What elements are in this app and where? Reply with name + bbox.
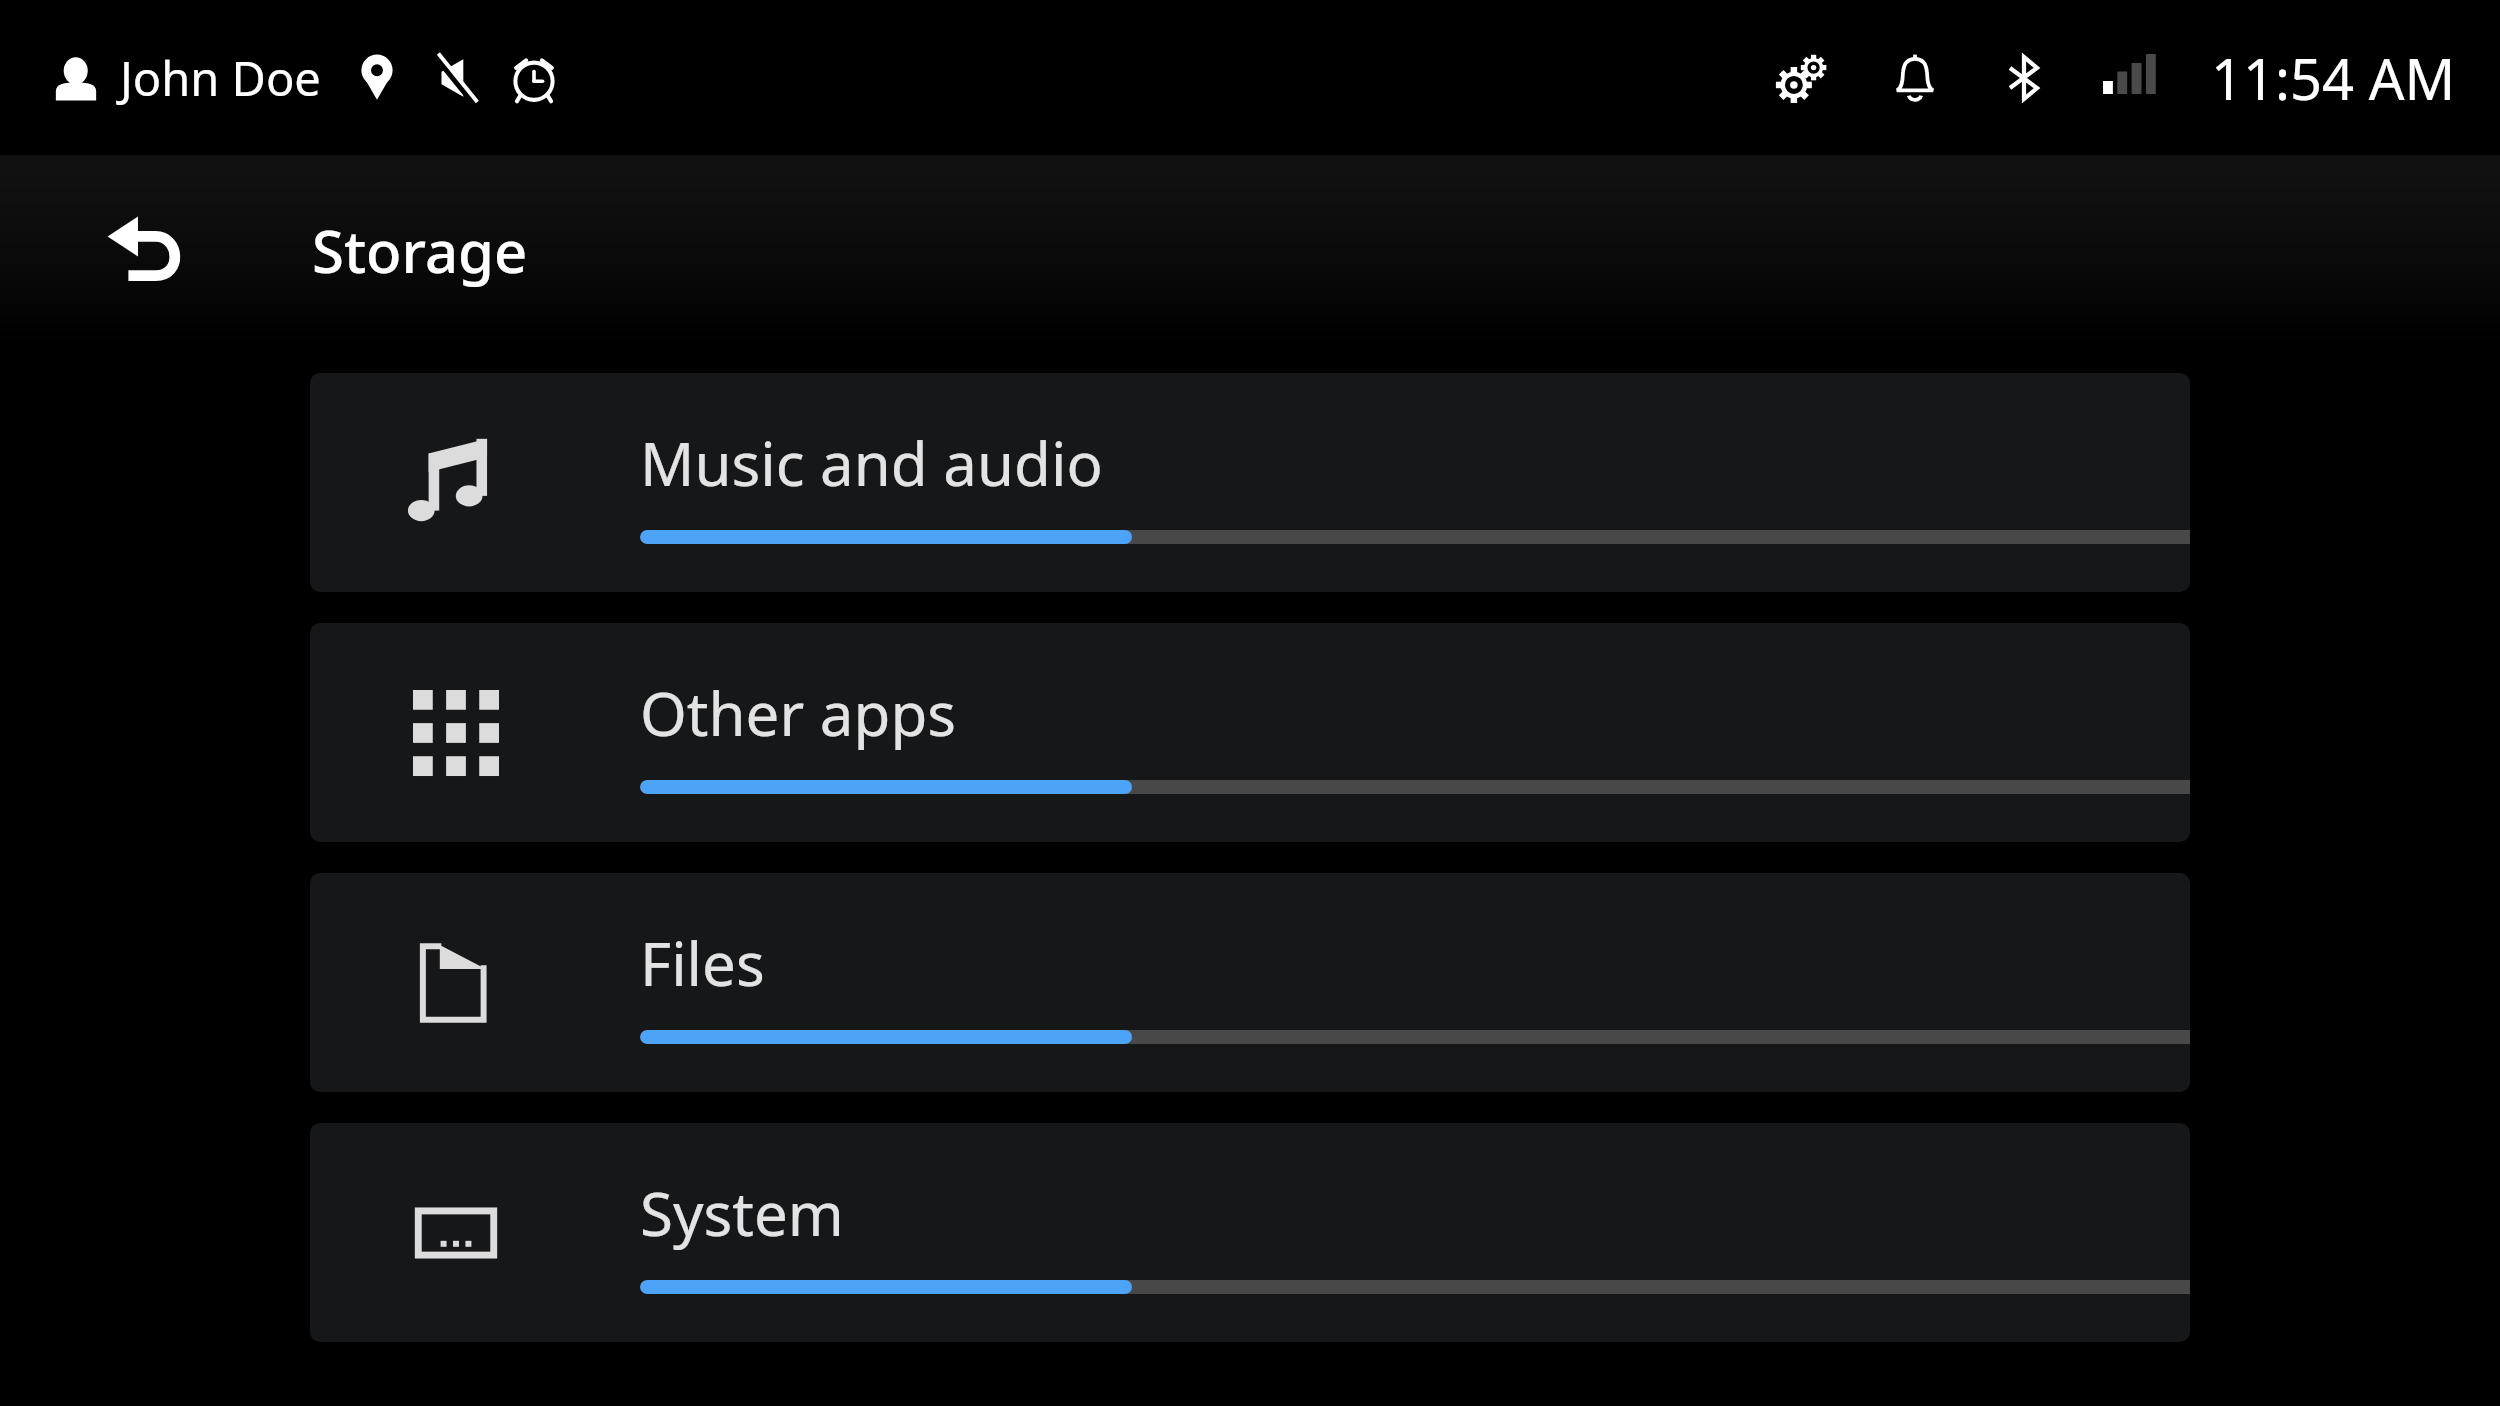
staticText: 11:54 AM [2211, 40, 2456, 116]
button[interactable]: User profile [48, 50, 104, 106]
staticText: Storage [312, 211, 528, 290]
button[interactable]: Back [96, 200, 196, 300]
other: Location [351, 52, 403, 104]
staticText: System [640, 1172, 2190, 1254]
button[interactable]: Music and audio [310, 373, 2190, 592]
other: Sound muted [429, 52, 481, 104]
staticText: Files [640, 922, 2190, 1004]
button[interactable]: Other apps [310, 623, 2190, 842]
other: Alarm set [507, 51, 561, 105]
button[interactable]: Settings [1773, 49, 1831, 107]
other: Bluetooth [1999, 53, 2049, 103]
staticText: Music and audio [640, 422, 2190, 504]
button[interactable]: Notifications [1889, 52, 1941, 104]
button[interactable]: System [310, 1123, 2190, 1342]
other: Cellular signal [2103, 53, 2155, 103]
staticText: John Doe [120, 46, 321, 110]
button[interactable]: Files [310, 873, 2190, 1092]
staticText: Other apps [640, 672, 2190, 754]
